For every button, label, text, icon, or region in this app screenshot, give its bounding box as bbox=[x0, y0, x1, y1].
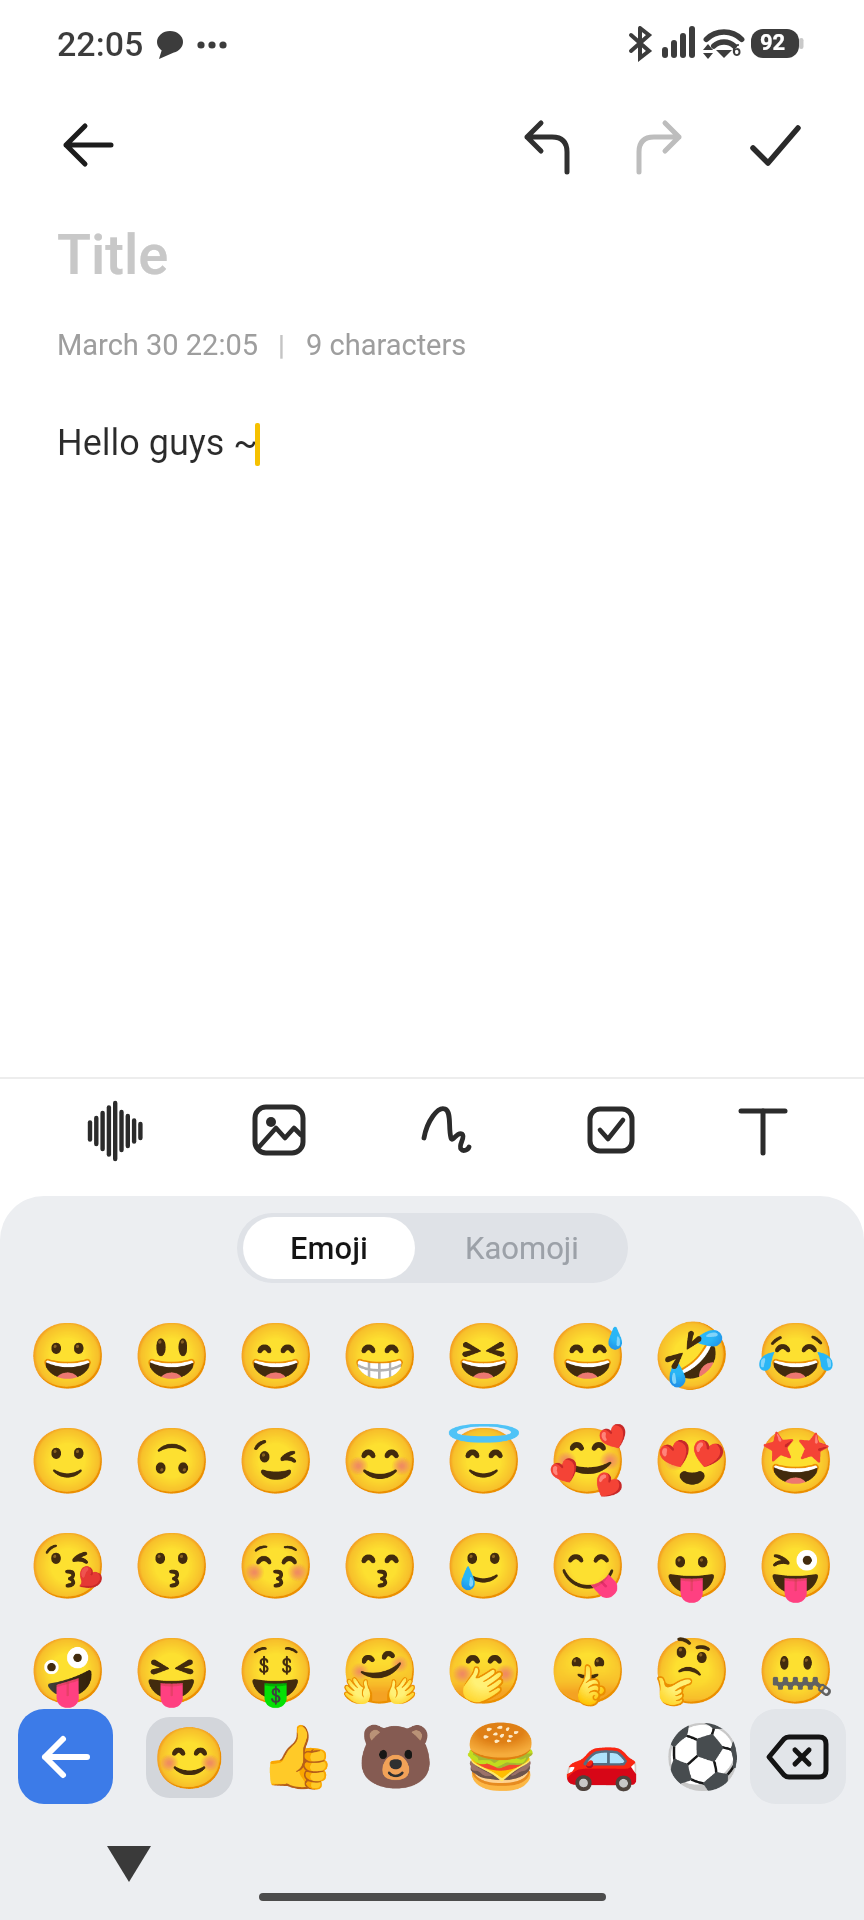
staticText: 🤐 bbox=[756, 1634, 836, 1709]
button[interactable]: 😙 bbox=[328, 1514, 432, 1619]
button[interactable]: 😂 bbox=[744, 1304, 848, 1409]
button[interactable]: 😄 bbox=[224, 1304, 328, 1409]
staticText: 😛 bbox=[652, 1529, 732, 1604]
button[interactable]: 🐻 bbox=[357, 1717, 423, 1798]
button[interactable]: 🤫 bbox=[536, 1619, 640, 1724]
staticText: Hello guys ~ bbox=[57, 422, 258, 464]
staticText: 22:05 bbox=[57, 24, 144, 64]
button[interactable] bbox=[18, 1709, 113, 1804]
button[interactable] bbox=[83, 1097, 151, 1165]
button[interactable]: 🤑 bbox=[224, 1619, 328, 1724]
button[interactable]: 😗 bbox=[120, 1514, 224, 1619]
staticText: 😊 bbox=[340, 1424, 420, 1499]
button[interactable]: 🥲 bbox=[432, 1514, 536, 1619]
staticText: 😀 bbox=[28, 1319, 108, 1394]
button[interactable]: 😋 bbox=[536, 1514, 640, 1619]
staticText: 🐻 bbox=[357, 1721, 423, 1794]
button[interactable]: 😁 bbox=[328, 1304, 432, 1409]
button[interactable] bbox=[45, 112, 113, 180]
staticText: 😇 bbox=[444, 1424, 524, 1499]
staticText: 😙 bbox=[340, 1529, 420, 1604]
staticText: 🥲 bbox=[444, 1529, 524, 1604]
button[interactable]: 😀 bbox=[16, 1304, 120, 1409]
staticText: 😅 bbox=[548, 1319, 628, 1394]
button[interactable]: 😆 bbox=[432, 1304, 536, 1409]
button[interactable] bbox=[750, 1709, 846, 1804]
button[interactable]: 😅 bbox=[536, 1304, 640, 1409]
staticText: 😍 bbox=[652, 1424, 732, 1499]
staticText: 🙂 bbox=[28, 1424, 108, 1499]
staticText: 😚 bbox=[236, 1529, 316, 1604]
staticText: 😋 bbox=[548, 1529, 628, 1604]
staticText: 😄 bbox=[236, 1319, 316, 1394]
staticText: 😘 bbox=[28, 1529, 108, 1604]
staticText: 🤩 bbox=[756, 1424, 836, 1499]
button[interactable] bbox=[740, 112, 812, 180]
button[interactable]: 😊 bbox=[146, 1717, 233, 1798]
staticText: Kaomoji bbox=[465, 1230, 579, 1266]
staticText: Title bbox=[57, 222, 169, 288]
staticText: 😂 bbox=[756, 1319, 836, 1394]
staticText: March 30 22:05 bbox=[57, 328, 259, 362]
button[interactable]: 🤗 bbox=[328, 1619, 432, 1724]
button[interactable]: 🤔 bbox=[640, 1619, 744, 1724]
staticText: 🙃 bbox=[132, 1424, 212, 1499]
button[interactable]: 🚗 bbox=[563, 1717, 629, 1798]
staticText: 🍔 bbox=[462, 1721, 528, 1794]
button[interactable]: 🤪 bbox=[16, 1619, 120, 1724]
button[interactable] bbox=[626, 112, 694, 180]
button[interactable]: 😘 bbox=[16, 1514, 120, 1619]
button[interactable]: 🙃 bbox=[120, 1409, 224, 1514]
button[interactable]: 😃 bbox=[120, 1304, 224, 1409]
staticText: | bbox=[278, 329, 285, 362]
button[interactable] bbox=[732, 1097, 794, 1165]
button[interactable]: 🤣 bbox=[640, 1304, 744, 1409]
button[interactable]: 😛 bbox=[640, 1514, 744, 1619]
button[interactable]: 🙂 bbox=[16, 1409, 120, 1514]
staticText: 🤑 bbox=[236, 1634, 316, 1709]
button[interactable]: Emoji bbox=[243, 1217, 415, 1279]
staticText: 👍 bbox=[259, 1721, 325, 1794]
button[interactable]: 🥰 bbox=[536, 1409, 640, 1514]
staticText: 😗 bbox=[132, 1529, 212, 1604]
staticText: 🤪 bbox=[28, 1634, 108, 1709]
staticText: 😝 bbox=[132, 1634, 212, 1709]
staticText: 6 bbox=[732, 41, 742, 60]
staticText: 🚗 bbox=[563, 1721, 629, 1794]
button[interactable]: 👍 bbox=[259, 1717, 325, 1798]
button[interactable] bbox=[580, 1097, 642, 1165]
staticText: 🤗 bbox=[340, 1634, 420, 1709]
button[interactable]: 😝 bbox=[120, 1619, 224, 1724]
staticText: 😜 bbox=[756, 1529, 836, 1604]
staticText: 9 characters bbox=[306, 328, 467, 362]
staticText: 😁 bbox=[340, 1319, 420, 1394]
staticText: 😊 bbox=[152, 1723, 227, 1793]
button[interactable]: 😉 bbox=[224, 1409, 328, 1514]
button[interactable]: 🤭 bbox=[432, 1619, 536, 1724]
button[interactable] bbox=[414, 1097, 482, 1165]
button[interactable]: Kaomoji bbox=[415, 1213, 628, 1283]
button[interactable]: ⚽ bbox=[664, 1717, 730, 1798]
staticText: ⚽ bbox=[664, 1721, 730, 1794]
button[interactable] bbox=[512, 112, 580, 180]
staticText: 🥰 bbox=[548, 1424, 628, 1499]
staticText: 😃 bbox=[132, 1319, 212, 1394]
button[interactable]: 😜 bbox=[744, 1514, 848, 1619]
staticText: 😉 bbox=[236, 1424, 316, 1499]
button[interactable] bbox=[98, 1838, 160, 1890]
button[interactable]: 😊 bbox=[328, 1409, 432, 1514]
button[interactable] bbox=[248, 1097, 310, 1165]
button[interactable]: 🤐 bbox=[744, 1619, 848, 1724]
staticText: 😆 bbox=[444, 1319, 524, 1394]
button[interactable]: 😍 bbox=[640, 1409, 744, 1514]
button[interactable]: 🍔 bbox=[462, 1717, 528, 1798]
staticText: 🤔 bbox=[652, 1634, 732, 1709]
staticText: 🤣 bbox=[652, 1319, 732, 1394]
staticText: 92 bbox=[760, 30, 786, 56]
staticText: Emoji bbox=[290, 1230, 368, 1266]
button[interactable]: 😚 bbox=[224, 1514, 328, 1619]
button[interactable]: 😇 bbox=[432, 1409, 536, 1514]
staticText: 🤫 bbox=[548, 1634, 628, 1709]
staticText: 🤭 bbox=[444, 1634, 524, 1709]
button[interactable]: 🤩 bbox=[744, 1409, 848, 1514]
